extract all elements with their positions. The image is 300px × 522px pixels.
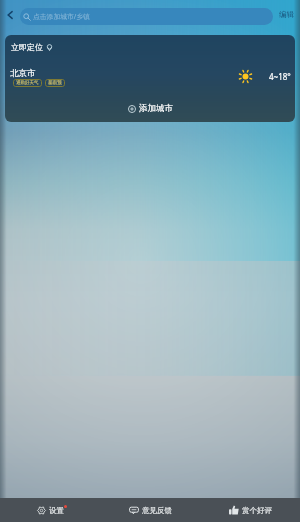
staticText: 4~18° [269,71,291,82]
staticText: 点击添加城市/乡镇 [33,12,90,21]
button[interactable]: 点击添加城市/乡镇 [20,8,273,25]
staticText: 添加城市 [139,103,173,114]
button[interactable]: 意见反馈 [100,498,200,522]
staticText: 立即定位 [11,42,43,52]
staticText: 赏个好评 [242,506,272,515]
staticText: 意见反馈 [142,506,172,515]
staticText: 编辑 [279,10,294,19]
staticText: 设置 [49,506,64,515]
button[interactable]: 编辑 [272,0,300,29]
staticText: 暴雨预 [48,80,62,86]
staticText: 北京市 [10,68,36,79]
button[interactable]: 添加城市 [5,94,295,122]
button[interactable]: Back [0,0,20,29]
button[interactable]: 设置 [0,498,100,522]
button[interactable]: 立即定位 [11,42,53,52]
staticText: 通勤好天气 [16,80,39,86]
button[interactable]: 赏个好评 [200,498,300,522]
